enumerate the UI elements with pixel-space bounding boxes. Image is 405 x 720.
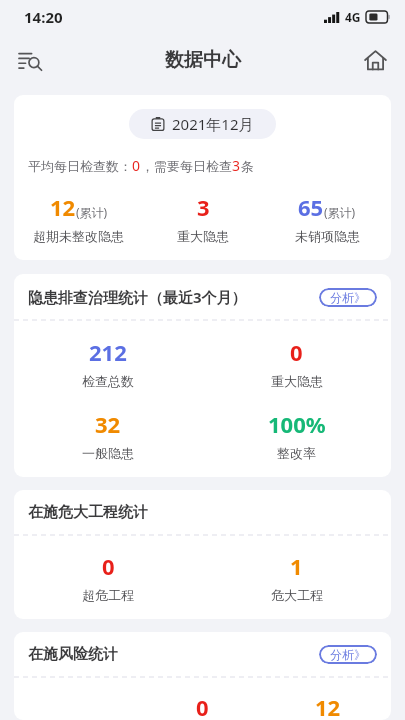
button[interactable]: 65	[265, 192, 389, 244]
staticText: 数据中心	[165, 48, 241, 72]
staticText: 0	[196, 692, 209, 720]
staticText: 重大隐患	[177, 228, 229, 244]
staticText: 整改率	[277, 445, 316, 461]
button[interactable]: 0	[202, 337, 391, 389]
staticText: 分析》	[330, 647, 366, 662]
staticText: 212	[89, 337, 127, 367]
staticText: 超期未整改隐患	[33, 228, 124, 244]
button[interactable]: 0	[14, 551, 202, 603]
button[interactable]: 32	[14, 409, 202, 461]
button[interactable]: 12	[16, 192, 141, 244]
staticText: 条	[241, 158, 254, 174]
button[interactable]: Home	[353, 38, 397, 82]
staticText: 2021年12月	[172, 114, 254, 134]
staticText: 65	[298, 192, 324, 222]
staticText: 在施风险统计	[28, 645, 319, 664]
staticText: 4G	[345, 9, 361, 25]
staticText: 32	[95, 409, 121, 439]
button[interactable]: 1	[202, 551, 391, 603]
staticText: 0	[102, 551, 115, 581]
button[interactable]: Search list	[7, 38, 51, 82]
staticText: 3	[232, 156, 241, 175]
staticText: 在施危大工程统计	[28, 503, 377, 522]
staticText: (累计)	[324, 204, 356, 220]
button[interactable]: 2021年12月	[129, 109, 276, 139]
staticText: 隐患排查治理统计（最近3个月）	[28, 287, 319, 307]
button[interactable]: 12	[265, 692, 391, 720]
staticText: 12	[315, 692, 341, 720]
button[interactable]: 分析》	[319, 645, 377, 664]
staticText: 分析》	[330, 290, 366, 305]
staticText: 0	[290, 337, 303, 367]
staticText: 超危工程	[82, 587, 134, 603]
button[interactable]: 0	[139, 692, 265, 720]
staticText: 100%	[268, 409, 326, 439]
staticText: 12	[50, 192, 76, 222]
button[interactable]: 212	[14, 337, 202, 389]
staticText: 14:20	[24, 7, 63, 27]
button[interactable]: 100%	[202, 409, 391, 461]
staticText: 平均每日检查数：	[28, 158, 132, 174]
staticText: 1	[290, 551, 303, 581]
staticText: 未销项隐患	[295, 228, 360, 244]
button[interactable]: 3	[141, 192, 265, 244]
staticText: (累计)	[76, 204, 108, 220]
button[interactable]: 分析》	[319, 288, 377, 307]
staticText: 重大隐患	[271, 373, 323, 389]
staticText: 检查总数	[82, 373, 134, 389]
staticText: 一般隐患	[82, 445, 134, 461]
staticText: ，需要每日检查	[141, 158, 232, 174]
staticText: 3	[197, 192, 210, 222]
staticText: 危大工程	[271, 587, 323, 603]
staticText: 0	[132, 156, 141, 175]
